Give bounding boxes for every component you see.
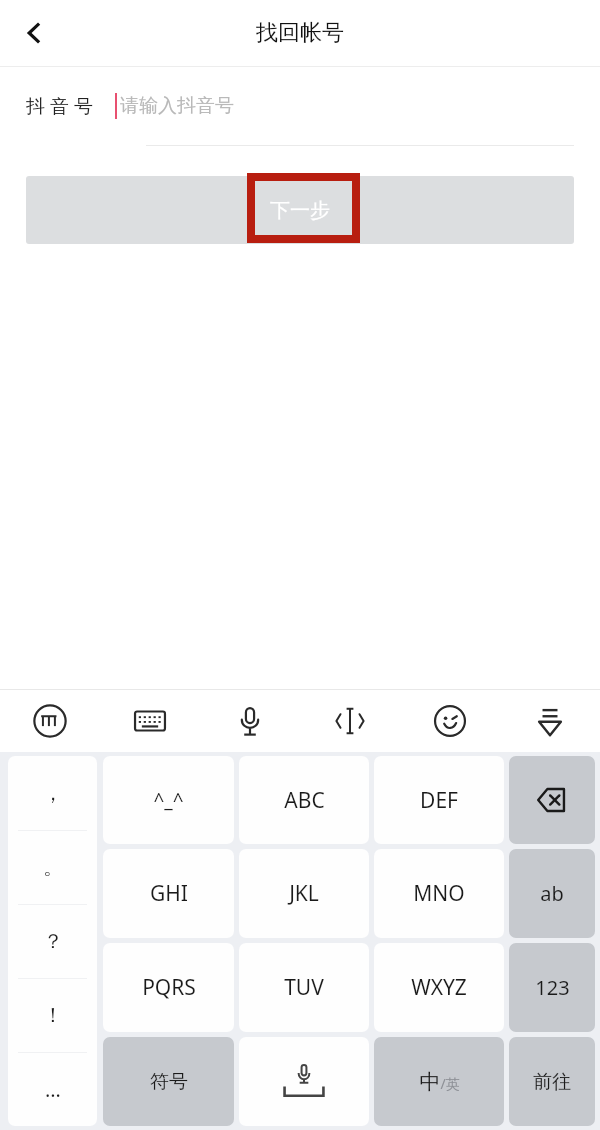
button[interactable]: WXYZ (374, 943, 504, 1032)
staticText: MNO (413, 879, 465, 908)
button[interactable]: DEF (374, 756, 504, 844)
staticText: 前往 (533, 1070, 571, 1094)
staticText: 。 (43, 855, 63, 880)
button[interactable]: 下一步 (26, 176, 574, 244)
button[interactable]: Emoji (400, 690, 500, 752)
button[interactable]: MNO (374, 849, 504, 938)
button[interactable]: ？ (8, 905, 97, 978)
button[interactable]: … (8, 1053, 97, 1126)
button[interactable]: Space (239, 1037, 369, 1126)
staticText: 找回帐号 (256, 19, 344, 47)
button[interactable]: Move cursor (300, 690, 400, 752)
button[interactable]: Back (8, 7, 60, 59)
button[interactable]: ！ (8, 979, 97, 1052)
staticText: DEF (420, 786, 458, 815)
staticText: 抖 音 号 (26, 93, 93, 119)
button[interactable]: PQRS (103, 943, 234, 1032)
button[interactable]: GHI (103, 849, 234, 938)
staticText: 下一步 (270, 198, 330, 223)
button[interactable]: Input method (0, 690, 100, 752)
staticText: ABC (284, 786, 325, 815)
button[interactable]: ab (509, 849, 595, 938)
staticText: JKL (289, 879, 319, 908)
staticText: TUV (284, 973, 324, 1002)
button[interactable]: TUV (239, 943, 369, 1032)
staticText: PQRS (142, 973, 196, 1002)
staticText: ^_^ (153, 787, 184, 813)
button[interactable]: Keyboard (100, 690, 200, 752)
staticText: 请输入抖音号 (120, 94, 234, 118)
button[interactable]: Hide keyboard (500, 690, 600, 752)
staticText: … (45, 1076, 61, 1103)
staticText: 123 (535, 974, 570, 1001)
staticText: ， (43, 781, 63, 806)
button[interactable]: 前往 (509, 1037, 595, 1126)
staticText: 符号 (150, 1070, 188, 1094)
button[interactable]: ABC (239, 756, 369, 844)
staticText: 中/英 (419, 1069, 460, 1095)
button[interactable]: Voice input (200, 690, 300, 752)
staticText: ！ (43, 1003, 63, 1028)
staticText: ？ (43, 929, 63, 954)
button[interactable]: 符号 (103, 1037, 234, 1126)
button[interactable]: 中/英 (374, 1037, 504, 1126)
staticText: GHI (150, 879, 188, 908)
button[interactable]: 123 (509, 943, 595, 1032)
button[interactable]: 。 (8, 831, 97, 904)
staticText: WXYZ (411, 973, 467, 1002)
button[interactable]: Backspace (509, 756, 595, 844)
staticText: ab (540, 880, 564, 907)
button[interactable]: ， (8, 756, 97, 830)
button[interactable]: JKL (239, 849, 369, 938)
button[interactable]: ^_^ (103, 756, 234, 844)
